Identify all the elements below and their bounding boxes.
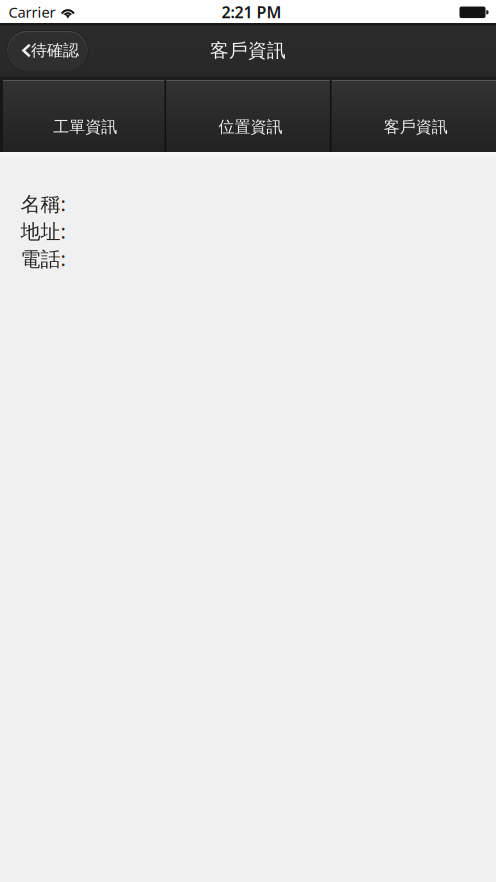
button[interactable]: 待確認	[6, 30, 88, 71]
staticText: 客戶資訊	[210, 39, 286, 62]
staticText: Carrier	[8, 2, 55, 22]
staticText: 名稱:	[20, 190, 65, 217]
staticText: 位置資訊	[218, 117, 282, 137]
button[interactable]: 客戶資訊	[334, 80, 496, 152]
staticText: 地址:	[20, 218, 65, 244]
staticText: 客戶資訊	[384, 117, 448, 137]
staticText: 電話:	[20, 245, 65, 272]
staticText: 待確認	[31, 41, 79, 60]
staticText: 工單資訊	[53, 117, 117, 137]
button[interactable]: 位置資訊	[169, 80, 332, 152]
button[interactable]: 工單資訊	[3, 80, 167, 152]
staticText: 2:21 PM	[221, 1, 281, 23]
